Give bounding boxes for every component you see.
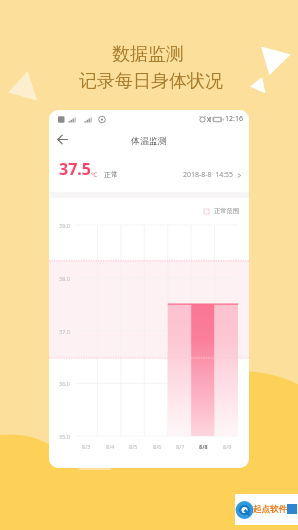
staticText: 37.5 bbox=[59, 158, 91, 180]
staticText: 8/9 bbox=[223, 443, 232, 450]
staticText: 正常范围 bbox=[214, 207, 240, 215]
staticText: 体温监测 bbox=[131, 135, 167, 146]
staticText: 正常 bbox=[104, 170, 118, 179]
staticText: 8/6 bbox=[153, 443, 162, 450]
button[interactable]: Back bbox=[51, 128, 73, 150]
staticText: 8/7 bbox=[176, 443, 185, 450]
staticText: 起点软件 bbox=[253, 504, 287, 515]
staticText: ℃ bbox=[91, 171, 97, 179]
staticText: 35.0 bbox=[59, 433, 70, 440]
staticText: 12:16 bbox=[225, 114, 243, 124]
staticText: 39.0 bbox=[59, 222, 70, 229]
staticText: 记录每日身体状况 bbox=[79, 70, 223, 93]
staticText: 8/8 bbox=[199, 443, 208, 450]
button[interactable]: 37.5 bbox=[49, 152, 249, 192]
staticText: 38.0 bbox=[59, 275, 70, 282]
staticText: 8/4 bbox=[106, 443, 115, 450]
staticText: 2018-8-8 14:55 bbox=[183, 170, 234, 180]
staticText: 数据监测 bbox=[112, 43, 184, 66]
staticText: 36.0 bbox=[59, 380, 70, 387]
staticText: 37.0 bbox=[59, 328, 70, 335]
staticText: 8/3 bbox=[82, 443, 91, 450]
staticText: 8/5 bbox=[129, 443, 138, 450]
